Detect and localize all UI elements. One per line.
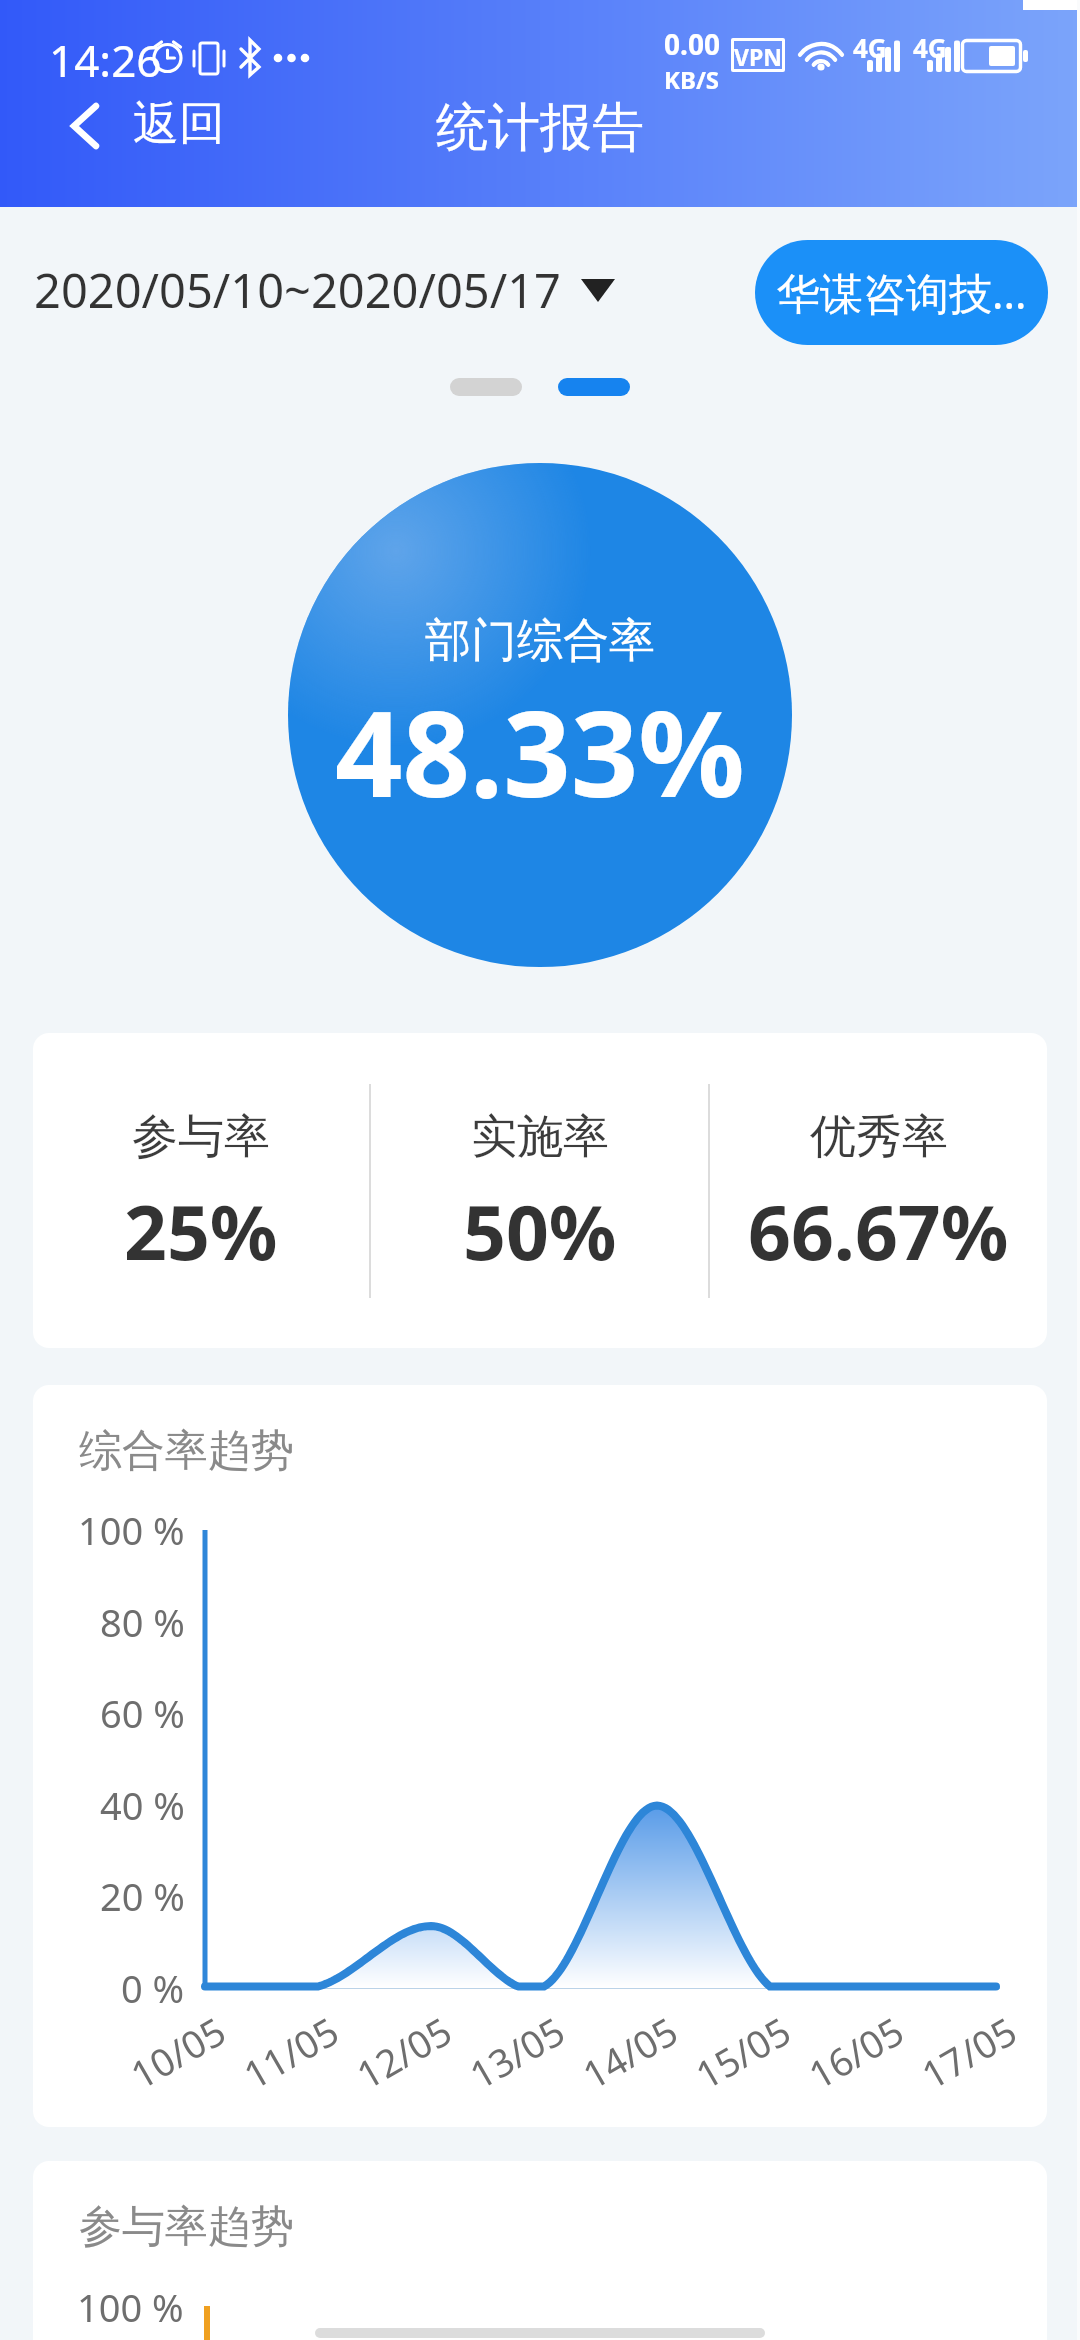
staticText: 25% bbox=[124, 1180, 278, 1282]
staticText: 0.00 bbox=[664, 25, 720, 63]
staticText: 66.67% bbox=[748, 1180, 1009, 1282]
staticText: 2020/05/10~2020/05/17 bbox=[34, 258, 561, 322]
button[interactable]: 部门综合率 bbox=[288, 463, 792, 967]
button[interactable]: 返回 bbox=[47, 80, 249, 172]
button[interactable]: Page 1 bbox=[450, 378, 522, 396]
staticText: KB/S bbox=[664, 63, 720, 96]
staticText: VPN bbox=[734, 41, 782, 69]
staticText: 4G bbox=[913, 30, 947, 65]
staticText: 48.33% bbox=[335, 671, 745, 832]
button[interactable]: 华谋咨询技... bbox=[755, 240, 1048, 345]
staticText: 返回 bbox=[133, 95, 225, 153]
button[interactable]: 实施率 bbox=[371, 1070, 708, 1312]
staticText: 实施率 bbox=[471, 1108, 609, 1166]
button[interactable]: Page 2 bbox=[558, 378, 630, 396]
staticText: 参与率 bbox=[132, 1108, 270, 1166]
staticText: 50% bbox=[463, 1180, 617, 1282]
button[interactable]: 优秀率 bbox=[710, 1070, 1047, 1312]
staticText: 14:26 bbox=[49, 30, 162, 90]
staticText: 华谋咨询技... bbox=[777, 263, 1027, 322]
button[interactable]: 2020/05/10~2020/05/17 bbox=[34, 250, 615, 330]
staticText: 统计报告 bbox=[436, 95, 644, 161]
staticText: 4G bbox=[853, 30, 887, 65]
staticText: 综合率趋势 bbox=[79, 1424, 294, 1478]
staticText: 优秀率 bbox=[810, 1108, 948, 1166]
staticText: 部门综合率 bbox=[425, 612, 655, 670]
button[interactable]: 参与率 bbox=[33, 1070, 369, 1312]
staticText: 100 % bbox=[77, 2281, 184, 2333]
staticText: 参与率趋势 bbox=[79, 2200, 294, 2254]
